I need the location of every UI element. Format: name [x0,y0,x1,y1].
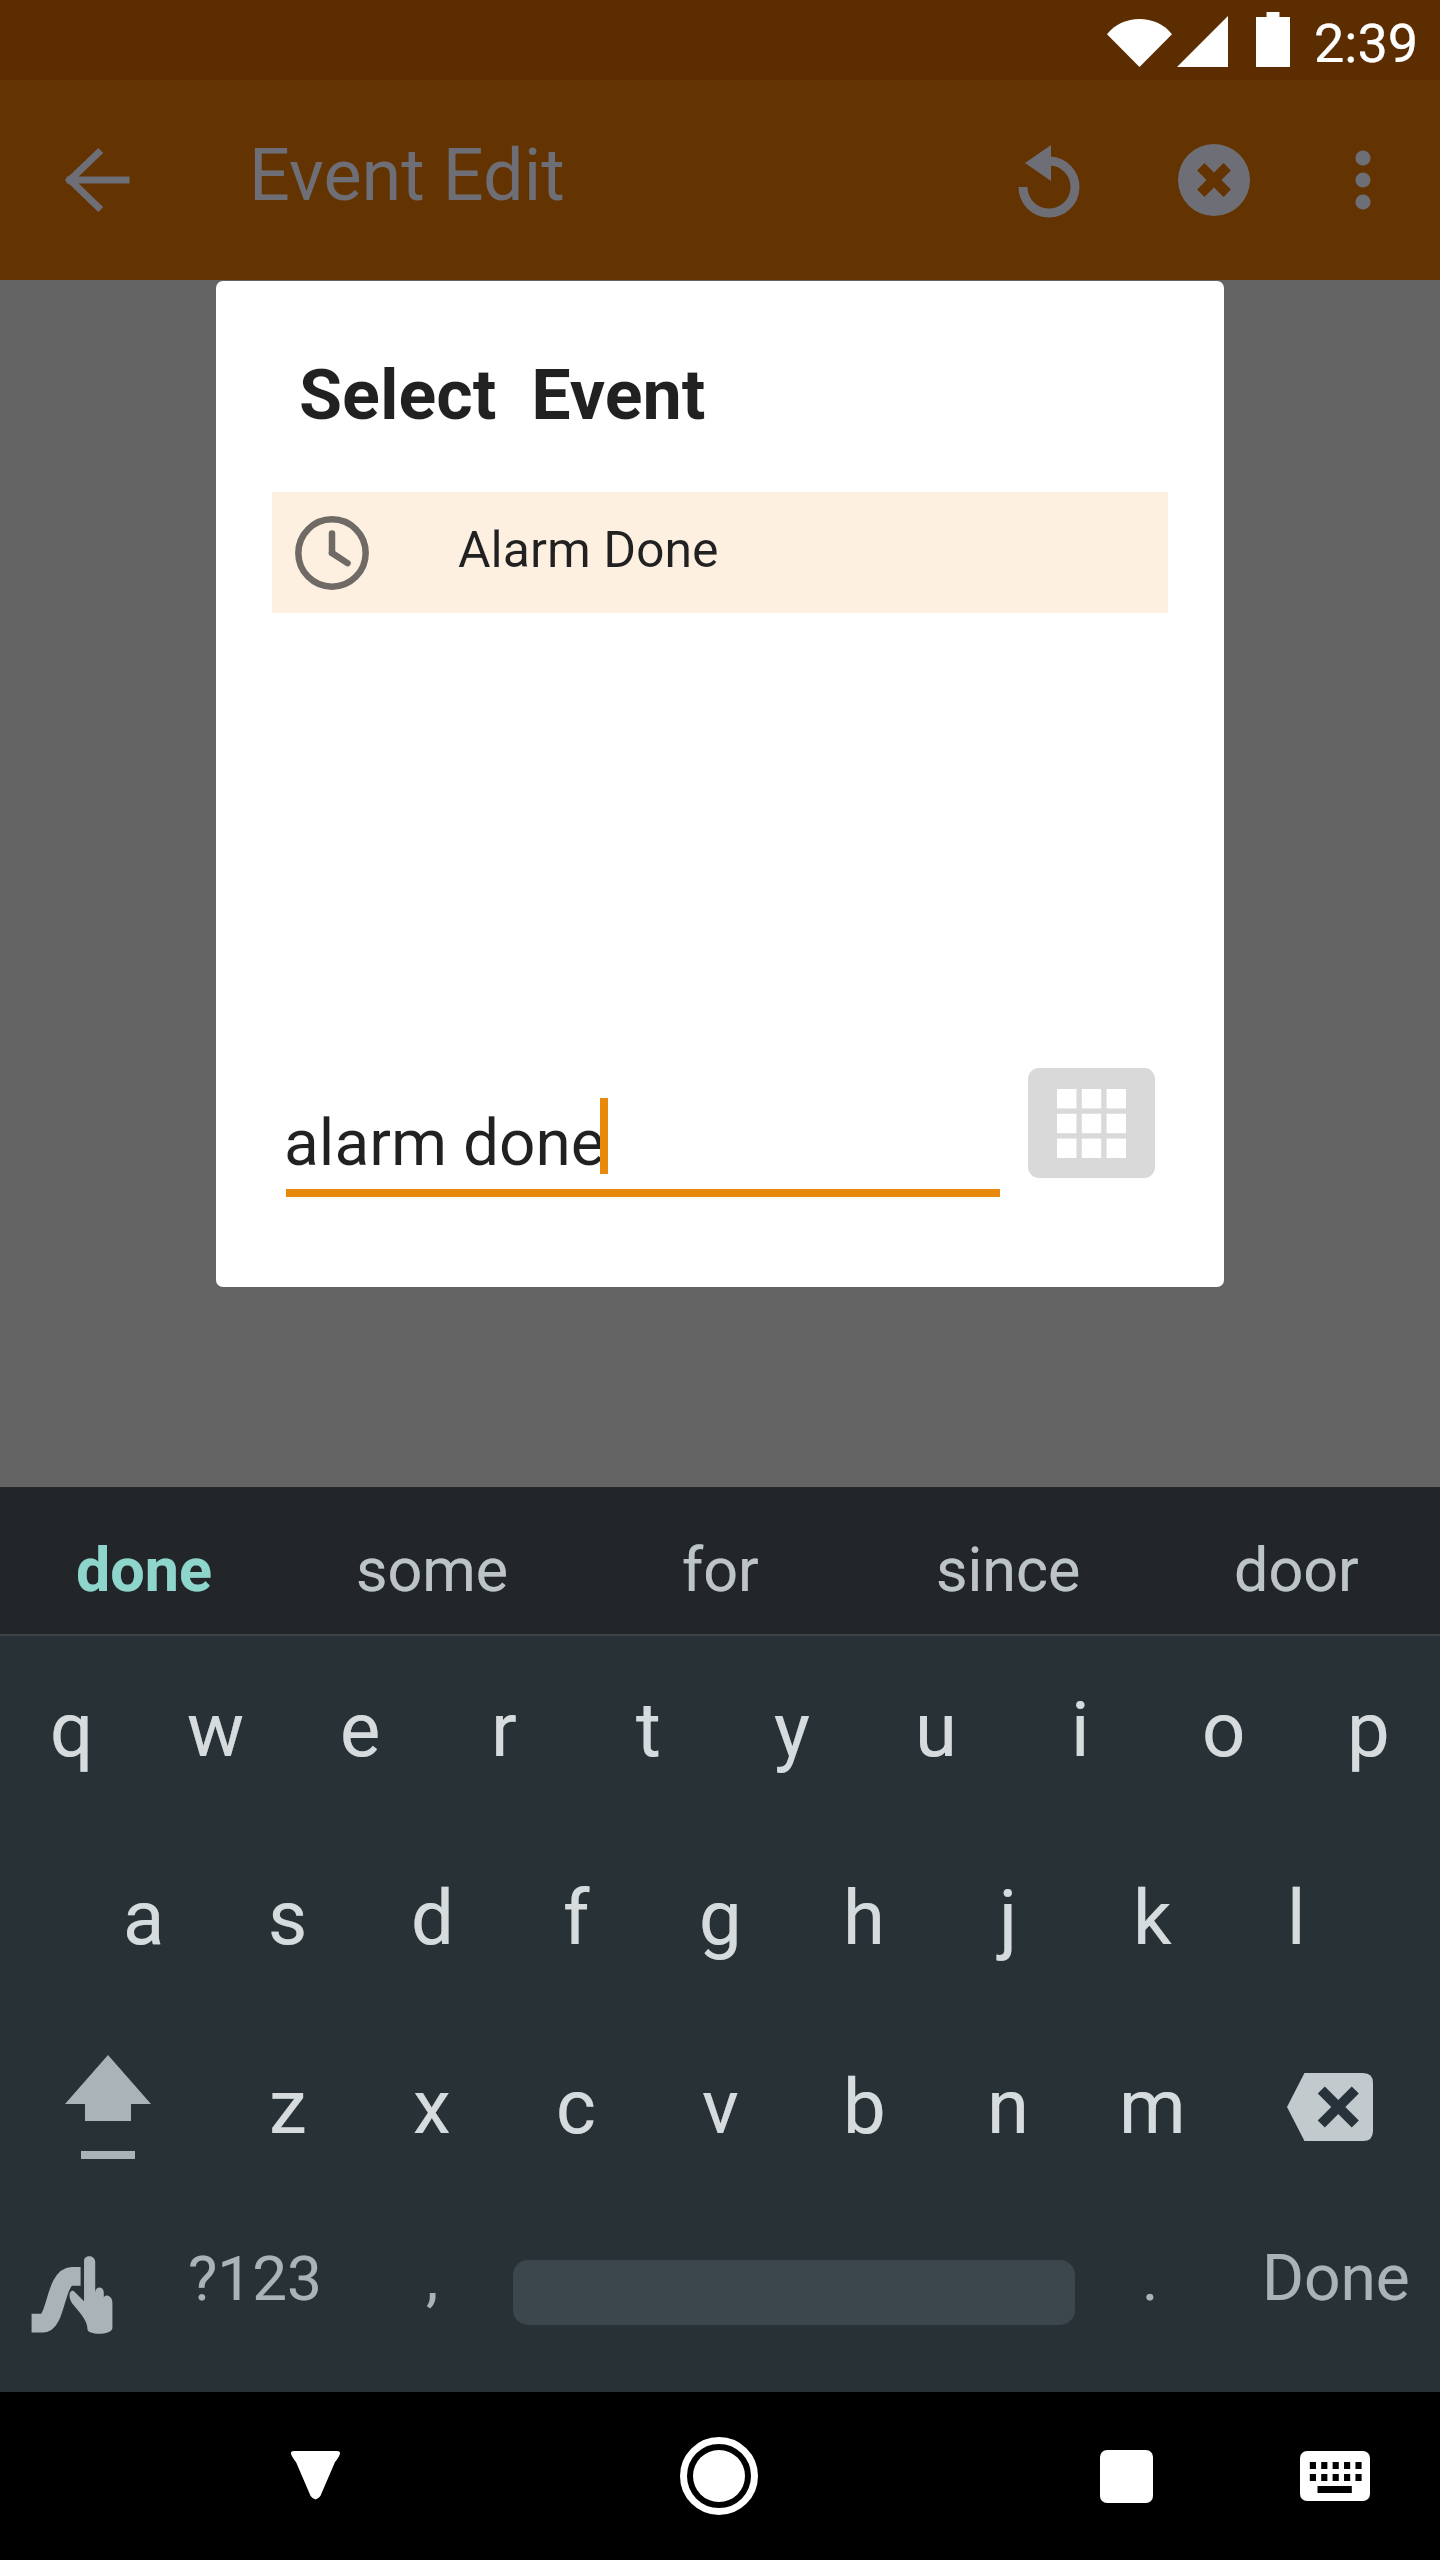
button[interactable]: w [144,1644,288,1814]
staticText: Select Event [299,354,706,436]
staticText: z [269,2062,307,2151]
staticText: b [843,2062,886,2151]
button[interactable]: s [216,1832,360,2002]
button[interactable]: a [72,1832,216,2002]
button[interactable]: ?123 [165,2183,345,2373]
staticText: . [1142,2242,1159,2315]
button[interactable]: for [576,1487,864,1634]
button[interactable]: some [288,1487,576,1634]
staticText: alarm done [284,1106,605,1181]
staticText: n [987,2062,1029,2151]
button[interactable]: since [864,1487,1152,1634]
button[interactable]: Change keyboard [1255,2392,1415,2560]
button[interactable]: , [362,2183,502,2373]
staticText: some [356,1534,509,1605]
staticText: r [491,1685,517,1774]
staticText: 2:39 [1314,12,1419,75]
button[interactable]: Cancel [1134,80,1294,280]
button[interactable]: f [504,1832,648,2002]
staticText: m [1119,2062,1186,2151]
button[interactable]: Home [639,2392,799,2560]
staticText: Alarm Done [458,521,719,580]
staticText: l [1287,1873,1306,1962]
staticText: g [699,1873,742,1962]
staticText: y [774,1685,810,1774]
button[interactable]: Space [505,2183,1082,2373]
button[interactable]: y [720,1644,864,1814]
button[interactable]: Back [235,2392,395,2560]
button[interactable]: More options [1283,80,1440,280]
button[interactable]: k [1080,1832,1224,2002]
staticText: f [563,1873,590,1962]
button[interactable]: l [1224,1832,1368,2002]
button[interactable]: done [0,1487,288,1634]
staticText: k [1133,1873,1172,1962]
staticText: e [340,1685,381,1774]
button[interactable]: z [216,2016,360,2196]
staticText: Event Edit [249,133,565,217]
staticText: Done [1262,2241,1410,2316]
button[interactable]: t [576,1644,720,1814]
button[interactable]: d [360,1832,504,2002]
button[interactable]: Delete [1253,2016,1413,2196]
button[interactable]: Recent apps [1046,2392,1206,2560]
staticText: u [915,1685,957,1774]
staticText: v [702,2062,739,2151]
staticText: done [76,1534,212,1605]
button[interactable]: q [0,1644,144,1814]
button[interactable]: . [1085,2183,1215,2373]
button[interactable]: Alarm Done [272,492,1168,613]
button[interactable]: Undo [966,80,1126,280]
button[interactable]: c [504,2016,648,2196]
staticText: t [636,1685,661,1774]
button[interactable]: v [648,2016,792,2196]
button[interactable]: o [1152,1644,1296,1814]
staticText: , [426,2242,439,2315]
button[interactable]: Choose input method [1028,1068,1155,1178]
staticText: c [556,2062,596,2151]
staticText: i [1071,1685,1090,1774]
staticText: w [187,1685,245,1774]
button[interactable]: m [1080,2016,1224,2196]
staticText: j [999,1873,1018,1962]
button[interactable]: Switch to emoji [0,2183,150,2373]
button[interactable]: b [792,2016,936,2196]
button[interactable]: u [864,1644,1008,1814]
button[interactable]: r [432,1644,576,1814]
button[interactable]: p [1296,1644,1440,1814]
button[interactable]: door [1152,1487,1440,1634]
button[interactable]: Navigate up [17,80,177,280]
staticText: p [1347,1685,1390,1774]
staticText: for [682,1534,759,1605]
staticText: since [936,1534,1081,1605]
button[interactable]: n [936,2016,1080,2196]
staticText: o [1202,1685,1246,1774]
staticText: h [843,1873,885,1962]
button[interactable]: h [792,1832,936,2002]
button[interactable]: x [360,2016,504,2196]
button[interactable]: g [648,1832,792,2002]
staticText: x [413,2062,451,2151]
staticText: s [268,1873,308,1962]
staticText: q [50,1685,94,1774]
staticText: ?123 [188,2242,322,2315]
button[interactable]: i [1008,1644,1152,1814]
staticText: d [411,1873,454,1962]
button[interactable]: e [288,1644,432,1814]
staticText: a [123,1873,165,1962]
button[interactable]: Done [1226,2183,1440,2373]
button[interactable]: Shift [28,2016,188,2196]
button[interactable]: j [936,1832,1080,2002]
staticText: door [1234,1534,1359,1605]
